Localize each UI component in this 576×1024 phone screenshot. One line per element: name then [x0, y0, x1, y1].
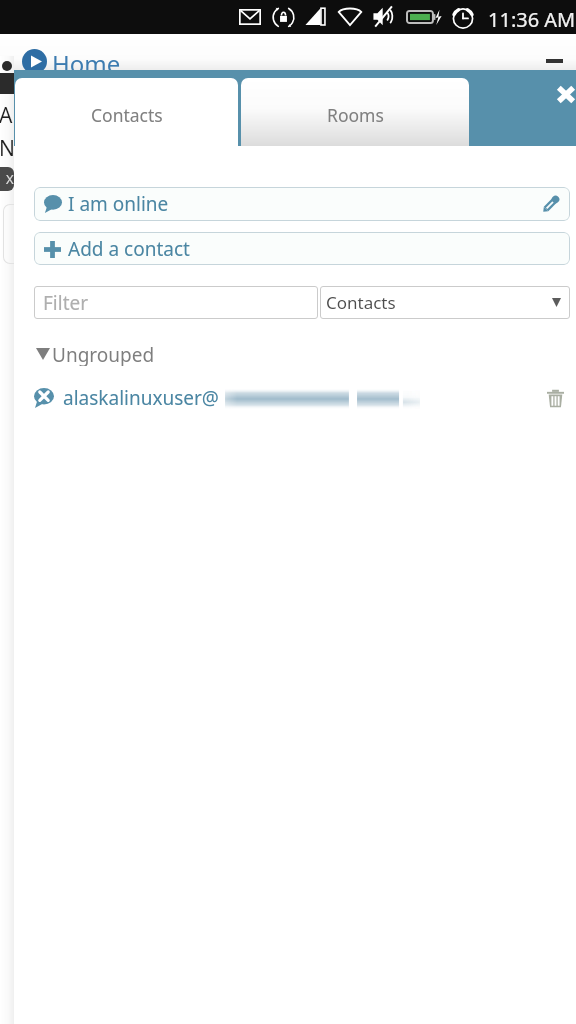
button[interactable]: Edit status message	[537, 191, 563, 217]
button[interactable]: Contacts	[15, 78, 238, 156]
button[interactable]: Close	[540, 70, 576, 117]
button[interactable]: I am online	[34, 187, 570, 221]
staticText: Home	[52, 47, 121, 80]
button[interactable]: alaskalinuxuser@	[14, 384, 576, 412]
staticText: Rooms	[327, 103, 384, 127]
button[interactable]: Add a contact	[34, 232, 570, 265]
staticText: Ungrouped	[52, 342, 155, 366]
staticText: Contacts	[91, 103, 163, 127]
button[interactable]: Contacts	[320, 286, 570, 319]
staticText: Filter	[43, 290, 89, 316]
staticText: 11:36 AM	[488, 6, 576, 33]
staticText: Contacts	[326, 291, 396, 314]
staticText: X	[6, 170, 14, 188]
staticText: Add a contact	[68, 236, 190, 262]
staticText: I am online	[68, 191, 169, 217]
button[interactable]: Ungrouped	[34, 342, 234, 366]
staticText: N	[0, 134, 13, 163]
button[interactable]: Delete contact	[542, 385, 568, 411]
button[interactable]: Filter	[34, 286, 318, 319]
button[interactable]: Rooms	[241, 78, 469, 146]
staticText: alaskalinuxuser@	[63, 385, 219, 411]
staticText: A	[0, 101, 13, 130]
